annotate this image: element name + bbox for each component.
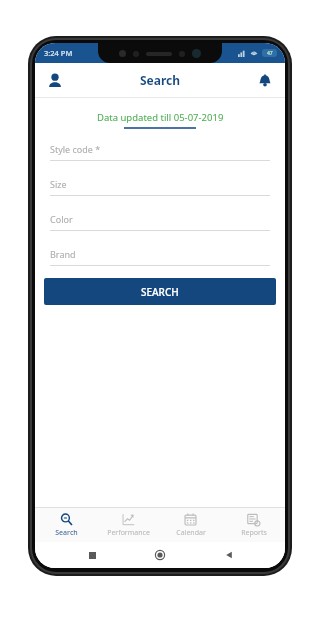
staticText: Performance (107, 528, 150, 538)
button[interactable]: Home (148, 543, 172, 567)
staticText: Brand (50, 248, 76, 260)
button[interactable]: Back (217, 543, 241, 567)
staticText: Search (140, 72, 181, 88)
button[interactable]: Performance (97, 508, 159, 542)
staticText: Search (55, 528, 78, 538)
staticText: 47 (267, 50, 273, 57)
button[interactable]: Reports (222, 508, 285, 542)
staticText: Calendar (176, 528, 206, 538)
button[interactable]: Recents (80, 543, 104, 567)
staticText: SEARCH (141, 285, 179, 299)
staticText: 3:24 PM (44, 48, 73, 58)
button[interactable]: Style code * (50, 143, 270, 161)
staticText: Style code * (50, 143, 101, 155)
button[interactable]: Color (50, 213, 270, 231)
staticText: Size (50, 178, 67, 190)
staticText: Color (50, 213, 73, 225)
button[interactable]: Size (50, 178, 270, 196)
button[interactable]: Notifications (251, 66, 279, 94)
staticText: Data updated till 05-07-2019 (97, 111, 224, 124)
button[interactable]: Calendar (159, 508, 222, 542)
staticText: Reports (241, 528, 267, 538)
button[interactable]: Brand (50, 248, 270, 266)
button[interactable]: Profile (41, 66, 69, 94)
button[interactable]: Search (35, 508, 97, 542)
button[interactable]: SEARCH (44, 278, 276, 305)
